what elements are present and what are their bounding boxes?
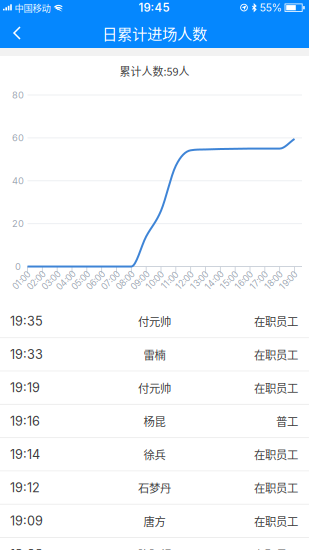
staticText: 19:12 [10, 480, 40, 495]
staticText: 55% [259, 1, 281, 14]
staticText: 19:14 [10, 447, 40, 462]
staticText: 01:00 [11, 275, 32, 286]
button[interactable]: 返回 [0, 0, 40, 48]
staticText: 在职员工 [254, 379, 298, 396]
button[interactable]: 19:08 [0, 538, 309, 550]
staticText: 19:33 [10, 347, 43, 362]
staticText: 陈阳超 [138, 546, 171, 550]
staticText: 12:00 [174, 275, 195, 286]
staticText: 20 [12, 218, 24, 229]
button[interactable]: 19:16 [0, 405, 309, 438]
staticText: 在职员工 [254, 346, 298, 363]
staticText: 19:16 [10, 413, 40, 429]
staticText: 16:00 [233, 275, 254, 286]
staticText: 14:00 [203, 275, 225, 286]
button[interactable]: 19:09 [0, 505, 309, 538]
staticText: 60 [12, 132, 24, 143]
staticText: 付元帅 [138, 313, 171, 329]
staticText: 在职员工 [254, 513, 298, 529]
staticText: 石梦丹 [138, 479, 171, 496]
staticText: 在职员工 [254, 546, 298, 550]
staticText: 10:00 [144, 275, 165, 286]
staticText: 中国移动 [14, 1, 50, 14]
staticText: 05:00 [70, 275, 92, 286]
staticText: 在职员工 [254, 446, 298, 462]
staticText: 19:09 [10, 513, 43, 529]
staticText: 杨昆 [143, 413, 165, 429]
staticText: 唐方 [143, 513, 165, 529]
staticText: 15:00 [219, 275, 240, 286]
staticText: 02:00 [25, 275, 47, 286]
staticText: 18:00 [263, 275, 284, 286]
staticText: 19:08 [10, 547, 43, 550]
staticText: 13:00 [189, 275, 210, 286]
staticText: 07:00 [99, 275, 121, 286]
staticText: 0 [15, 261, 21, 272]
staticText: 03:00 [40, 275, 62, 286]
button[interactable]: 19:19 [0, 372, 309, 405]
staticText: 11:00 [160, 275, 180, 286]
staticText: 付元帅 [138, 379, 171, 396]
staticText: 19:00 [278, 275, 299, 286]
staticText: 在职员工 [254, 479, 298, 496]
staticText: 累计人数:59人 [119, 63, 189, 79]
staticText: 09:00 [129, 275, 151, 286]
staticText: 徐兵 [143, 446, 165, 462]
staticText: 80 [12, 89, 24, 101]
staticText: 雷楠 [143, 346, 165, 363]
staticText: 日累计进场人数 [102, 22, 207, 44]
staticText: 08:00 [114, 275, 136, 286]
staticText: 19:19 [10, 380, 40, 395]
staticText: 40 [12, 175, 24, 186]
button[interactable]: 19:12 [0, 471, 309, 505]
button[interactable]: 19:35 [0, 305, 309, 338]
staticText: 06:00 [85, 275, 107, 286]
staticText: 在职员工 [254, 313, 298, 329]
button[interactable]: 19:14 [0, 438, 309, 471]
staticText: 普工 [276, 413, 298, 429]
staticText: 19:45 [138, 1, 169, 14]
staticText: 19:35 [10, 313, 43, 329]
staticText: 04:00 [54, 275, 77, 286]
button[interactable]: 19:33 [0, 338, 309, 372]
staticText: 17:00 [248, 275, 269, 286]
